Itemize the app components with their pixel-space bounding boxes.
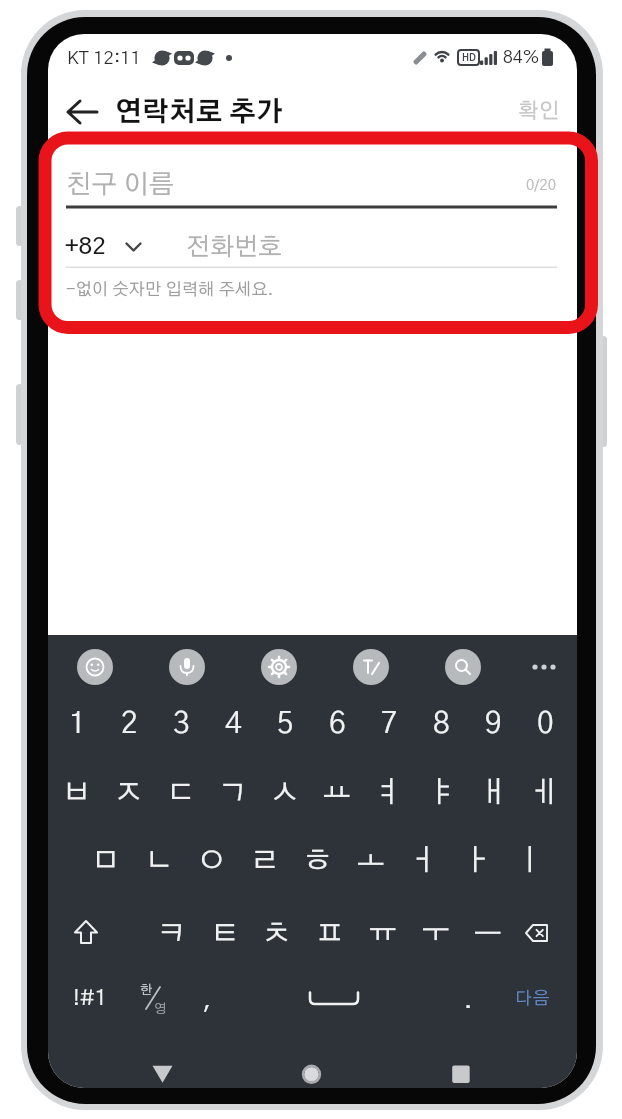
staticText: ㅇ — [197, 846, 227, 876]
staticText: ㅈ — [114, 778, 144, 808]
staticText: 8 — [433, 709, 450, 739]
staticText: HD — [462, 53, 476, 63]
staticText: 연락처로 추가 — [115, 99, 283, 126]
staticText: KT 12:11 — [67, 49, 141, 68]
staticText: ㅣ — [515, 846, 545, 876]
staticText: ㄹ — [250, 846, 280, 876]
staticText: 9 — [485, 709, 502, 739]
staticText: 0/20 — [526, 178, 557, 193]
staticText: . — [464, 989, 473, 1013]
staticText: 한 — [140, 984, 153, 997]
staticText: 전화번호 — [186, 235, 283, 260]
staticText: ㅕ — [374, 778, 404, 808]
staticText: ㅂ — [62, 778, 92, 808]
staticText: ㅋ — [157, 919, 187, 949]
staticText: ㄷ — [166, 778, 196, 808]
staticText: 6 — [329, 709, 346, 739]
staticText: 7 — [381, 709, 398, 739]
staticText: ㄴ — [144, 846, 174, 876]
staticText: 1 — [69, 709, 86, 739]
staticText: -없이 숫자만 입력해 주세요. — [66, 281, 274, 298]
staticText: ㅏ — [462, 846, 492, 876]
staticText: ㅔ — [530, 778, 560, 808]
staticText: , — [203, 989, 212, 1013]
staticText: 3 — [173, 709, 190, 739]
staticText: 영 — [154, 1003, 167, 1016]
staticText: 4 — [225, 709, 242, 739]
staticText: !#1 — [73, 988, 107, 1010]
staticText: ㅑ — [426, 778, 456, 808]
staticText: 5 — [277, 709, 294, 739]
staticText: ㄱ — [218, 778, 248, 808]
staticText: ㅊ — [262, 919, 292, 949]
staticText: +82 — [65, 235, 106, 259]
staticText: ㅌ — [210, 919, 240, 949]
staticText: ㅛ — [322, 778, 352, 808]
staticText: 확인 — [518, 101, 560, 123]
staticText: ㅍ — [315, 919, 345, 949]
staticText: 0 — [537, 709, 554, 739]
staticText: 2 — [121, 709, 138, 739]
staticText: ㅓ — [409, 846, 439, 876]
staticText: 다음 — [515, 990, 550, 1008]
staticText: ㅁ — [91, 846, 121, 876]
staticText: ㅠ — [368, 919, 398, 949]
staticText: ㅅ — [270, 778, 300, 808]
staticText: ㅎ — [303, 846, 333, 876]
staticText: ㅜ — [421, 919, 451, 949]
staticText: 84% — [503, 49, 540, 67]
staticText: ㅗ — [356, 846, 386, 876]
staticText: ㅡ — [473, 919, 503, 949]
staticText: 친구 이름 — [66, 172, 175, 199]
staticText: ㅐ — [478, 778, 508, 808]
